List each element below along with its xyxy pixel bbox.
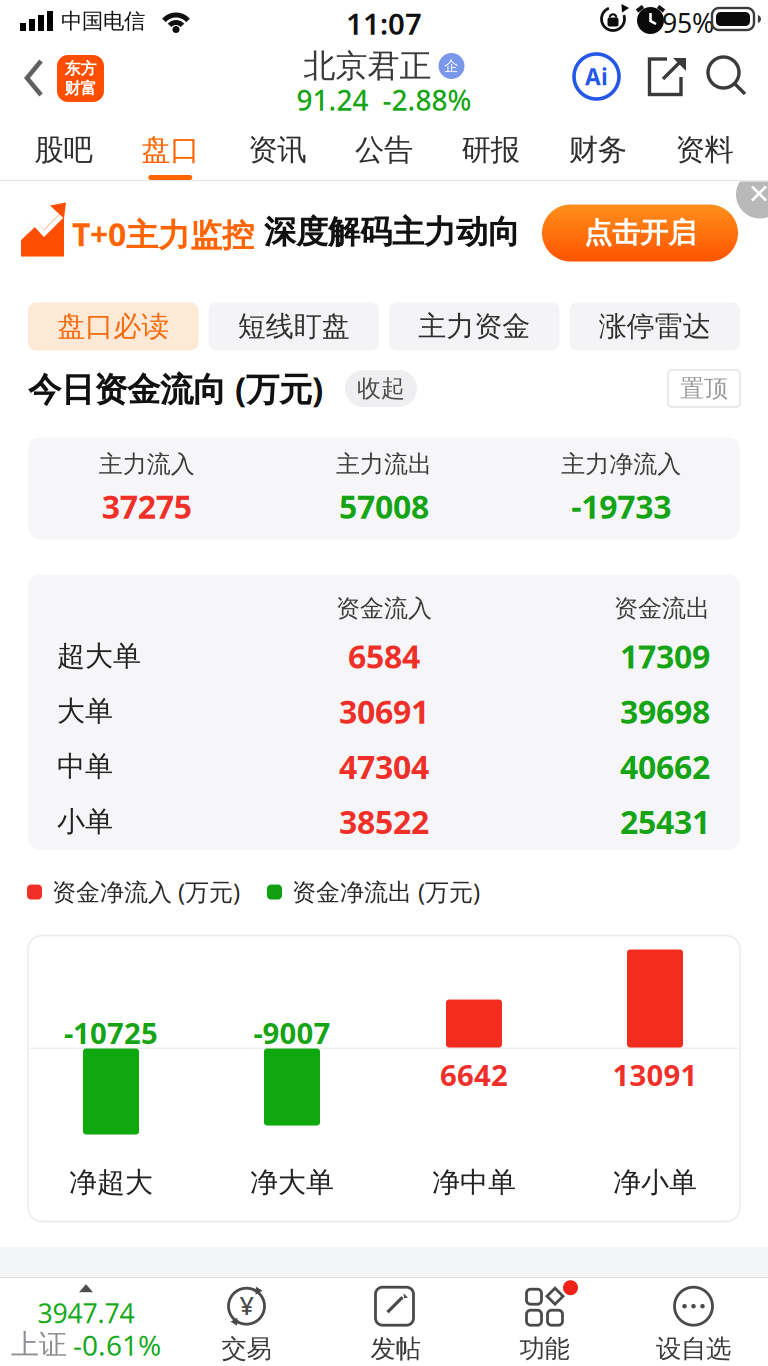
button[interactable]: 资讯 (224, 120, 331, 180)
button[interactable]: 功能 (470, 1278, 619, 1366)
staticText: 主力流入 (99, 449, 195, 479)
staticText: 净超大 (69, 1165, 153, 1200)
button[interactable]: 收起 (345, 370, 417, 407)
staticText: 短线盯盘 (238, 309, 350, 344)
staticText: 11:07 (346, 4, 422, 43)
button[interactable]: 东方财富 (57, 55, 104, 102)
staticText: 37275 (102, 485, 192, 527)
staticText: -9007 (253, 1013, 330, 1052)
staticText: 资金流入 (336, 594, 432, 623)
button[interactable]: 涨停雷达 (569, 302, 740, 350)
button[interactable]: 公告 (331, 120, 437, 180)
button[interactable]: ¥ (172, 1278, 321, 1366)
staticText: 交易 (221, 1333, 271, 1364)
staticText: 功能 (519, 1333, 569, 1364)
staticText: 企 (444, 57, 459, 75)
staticText: 3947.74 (37, 1295, 134, 1331)
staticText: 盘口 (141, 132, 199, 168)
staticText: -19733 (571, 485, 671, 527)
button[interactable]: 研报 (437, 120, 544, 180)
staticText: 设自选 (656, 1333, 731, 1364)
staticText: 点击开启 (584, 216, 696, 250)
staticText: 涨停雷达 (599, 309, 711, 344)
staticText: T+0主力监控 (72, 212, 254, 255)
staticText: 发帖 (370, 1333, 420, 1364)
button[interactable]: 关闭广告 (736, 170, 768, 218)
button[interactable]: 盘口 (117, 120, 224, 180)
button[interactable]: 资料 (651, 120, 758, 180)
staticText: 30691 (339, 690, 429, 733)
button[interactable]: 置顶 (668, 370, 740, 407)
staticText: 中国电信 (61, 8, 145, 34)
button[interactable]: 发帖 (321, 1278, 470, 1366)
staticText: 小单 (57, 804, 113, 839)
staticText: 38522 (339, 800, 429, 843)
button[interactable]: 盘口必读 (28, 302, 198, 350)
staticText: 中单 (57, 749, 113, 784)
staticText: 资金净流出 (万元) (292, 876, 480, 907)
staticText: 主力流出 (336, 449, 432, 479)
staticText: 北京君正 (303, 46, 431, 86)
button[interactable]: 短线盯盘 (208, 302, 379, 350)
button[interactable]: 3947.74 (0, 1278, 172, 1366)
staticText: 资金净流入 (万元) (52, 876, 240, 907)
staticText: 57008 (339, 485, 429, 527)
staticText: 25431 (620, 800, 710, 843)
staticText: 收起 (357, 374, 405, 403)
staticText: 资讯 (248, 132, 306, 168)
button[interactable]: 股吧 (10, 120, 117, 180)
staticText: 47304 (339, 745, 429, 788)
staticText: 主力净流入 (561, 449, 681, 479)
button[interactable]: 分享 (645, 57, 687, 97)
staticText: 大单 (57, 694, 113, 728)
staticText: 40662 (620, 745, 710, 788)
staticText: 超大单 (57, 639, 141, 673)
staticText: 95% (662, 5, 714, 40)
staticText: 主力资金 (418, 309, 530, 344)
button[interactable]: Ai助手 (574, 54, 619, 99)
staticText: 资料 (676, 132, 734, 168)
staticText: 13091 (612, 1055, 697, 1094)
staticText: 公告 (355, 132, 413, 168)
button[interactable]: 设自选 (619, 1278, 768, 1366)
button[interactable]: 返回 (0, 44, 56, 120)
staticText: 研报 (462, 132, 520, 168)
staticText: -10725 (64, 1013, 158, 1052)
staticText: 置顶 (680, 374, 728, 403)
staticText: 盘口必读 (57, 309, 169, 344)
staticText: 6584 (348, 635, 420, 677)
button[interactable]: 搜索 (708, 57, 746, 95)
staticText: 今日资金流向 (万元) (28, 366, 323, 411)
staticText: 17309 (620, 635, 710, 677)
staticText: 东方 (64, 59, 96, 78)
staticText: 上证 (11, 1328, 67, 1362)
staticText: 6642 (440, 1055, 508, 1094)
staticText: 净小单 (613, 1165, 697, 1200)
staticText: 91.24 -2.88% (296, 81, 471, 119)
staticText: 净大单 (250, 1165, 334, 1200)
staticText: 39698 (620, 690, 710, 733)
staticText: 资金流出 (614, 594, 710, 623)
staticText: ¥ (239, 1288, 253, 1322)
button[interactable]: T+0主力监控 (0, 181, 768, 302)
staticText: 财富 (64, 78, 96, 98)
staticText: 股吧 (34, 132, 92, 168)
button[interactable]: 主力资金 (389, 302, 559, 350)
staticText: 深度解码主力动向 (264, 212, 520, 252)
staticText: 财务 (569, 132, 627, 168)
staticText: -0.61% (73, 1326, 161, 1363)
staticText: Ai (585, 61, 608, 91)
button[interactable]: 财务 (544, 120, 651, 180)
staticText: 净中单 (432, 1165, 516, 1200)
